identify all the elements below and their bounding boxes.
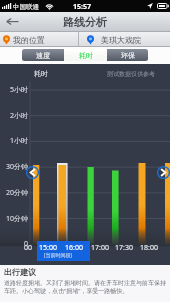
staticText: 道路轻度拥堵。又到了拥堵时间。请在开车时注意与前车保持车距。小心驾驶，点击“拥堵… [4,279,166,295]
staticText: 16:00 [65,243,83,253]
staticText: 耗时 [79,51,93,60]
button[interactable]: 耗时 [64,49,107,61]
button[interactable]: 速度 [22,49,64,61]
staticText: 1小时 [9,136,28,146]
button[interactable]: 我的位置 [0,32,78,47]
staticText: (当前时间段) [44,252,73,259]
staticText: 10分钟 [5,214,28,224]
button[interactable] [37,241,90,261]
staticText: 测试数据仅供参考 [107,70,155,78]
button[interactable]: 美琪大戏院 [79,32,170,47]
staticText: 我的位置 [13,35,45,45]
staticText: 路线分析 [63,15,107,29]
staticText: 15:00 [39,243,57,253]
button[interactable]: Next time range [157,166,170,179]
staticText: 30分钟 [5,162,28,172]
staticText: 2小时 [9,111,28,121]
staticText: 耗时 [34,69,48,78]
staticText: 环保 [121,51,135,60]
staticText: 0 [23,239,28,249]
button[interactable]: 环保 [107,49,148,61]
staticText: 5小时 [9,85,28,95]
staticText: 17:30 [115,243,133,253]
staticText: 美琪大戏院 [101,35,141,45]
button[interactable]: Back [0,12,24,32]
staticText: 速度 [36,51,50,60]
staticText: 中国联通 [13,3,39,11]
staticText: 15:57 [73,2,91,12]
staticText: 20分钟 [5,188,28,198]
button[interactable]: Previous time range [26,166,39,179]
staticText: 00 [24,243,33,253]
staticText: 17:00 [91,243,109,253]
staticText: 18:00 [140,243,158,253]
staticText: 出行建议 [4,267,36,277]
